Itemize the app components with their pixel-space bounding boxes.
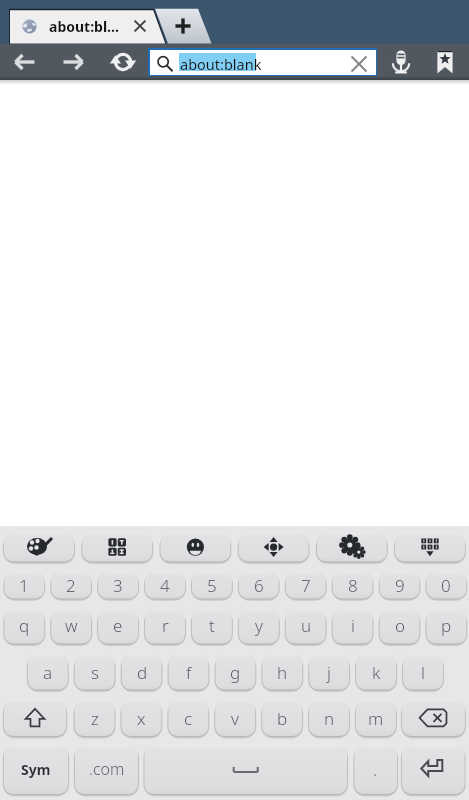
button[interactable]: Clear [351, 56, 367, 72]
staticText: g [230, 661, 241, 684]
button[interactable]: w [51, 608, 91, 643]
button[interactable]: u [286, 608, 326, 643]
staticText: v [231, 707, 239, 730]
button[interactable]: shift [4, 700, 66, 736]
button[interactable]: v [215, 700, 255, 736]
button[interactable]: k [356, 654, 396, 690]
button[interactable]: gear [317, 533, 387, 562]
staticText: 9 [395, 574, 405, 597]
button[interactable]: grid [395, 533, 465, 562]
staticText: about:blank [180, 54, 262, 74]
button[interactable]: f [169, 654, 209, 690]
staticText: e [113, 614, 123, 637]
button[interactable]: s [75, 654, 115, 690]
staticText: q [19, 614, 30, 637]
staticText: n [324, 707, 335, 730]
staticText: a [43, 661, 53, 684]
staticText: d [137, 661, 148, 684]
button[interactable]: Sym [4, 744, 68, 794]
button[interactable]: Reload [105, 47, 141, 77]
staticText: o [395, 614, 406, 637]
button[interactable]: n [309, 700, 349, 736]
staticText: y [255, 614, 263, 637]
staticText: k [372, 661, 381, 684]
button[interactable]: c [168, 700, 208, 736]
button[interactable]: m [356, 700, 396, 736]
button[interactable]: h [262, 654, 302, 690]
button[interactable]: . [354, 744, 397, 794]
staticText: 8 [348, 574, 358, 597]
button[interactable]: about:blank [148, 48, 377, 76]
button[interactable]: t [192, 608, 232, 643]
button[interactable]: y [239, 608, 279, 643]
button[interactable]: Close tab [130, 16, 150, 36]
staticText: u [301, 614, 312, 637]
button[interactable]: e [98, 608, 138, 643]
staticText: 6 [254, 574, 264, 597]
button[interactable]: 1 [4, 571, 44, 599]
button[interactable]: p [426, 608, 466, 643]
staticText: 5 [207, 574, 217, 597]
staticText: 0 [441, 574, 451, 597]
staticText: j [327, 661, 331, 684]
button[interactable]: enter [402, 744, 465, 794]
staticText: t [209, 614, 215, 637]
button[interactable]: 9 [380, 571, 420, 599]
button[interactable]: back [402, 700, 465, 736]
staticText: Sym [21, 760, 51, 779]
button[interactable]: d [122, 654, 162, 690]
staticText: w [65, 614, 78, 637]
staticText: z [91, 707, 99, 730]
button[interactable]: Bookmark [430, 47, 460, 77]
staticText: m [368, 707, 384, 730]
staticText: .com [89, 758, 125, 780]
staticText: b [277, 707, 288, 730]
staticText: p [441, 614, 452, 637]
button[interactable]: b [262, 700, 302, 736]
button[interactable]: o [380, 608, 420, 643]
staticText: 7 [301, 574, 311, 597]
button[interactable]: 8 [333, 571, 373, 599]
button[interactable]: a [28, 654, 68, 690]
button[interactable]: space [144, 744, 347, 794]
staticText: 3 [113, 574, 123, 597]
button[interactable]: i [333, 608, 373, 643]
button[interactable]: r [145, 608, 185, 643]
button[interactable]: palette [4, 533, 74, 562]
staticText: c [184, 707, 193, 730]
button[interactable]: q [4, 608, 44, 643]
button[interactable]: move [239, 533, 309, 562]
button[interactable]: 4 [145, 571, 185, 599]
staticText: f [186, 661, 192, 684]
button[interactable]: num [82, 533, 152, 562]
staticText: x [137, 707, 146, 730]
staticText: 4 [160, 574, 170, 597]
button[interactable]: x [121, 700, 161, 736]
staticText: 2 [66, 574, 76, 597]
staticText: r [162, 614, 169, 637]
button[interactable]: z [75, 700, 115, 736]
button[interactable]: New tab [174, 17, 192, 35]
button[interactable]: 6 [239, 571, 279, 599]
button[interactable]: 7 [286, 571, 326, 599]
button[interactable]: 3 [98, 571, 138, 599]
button[interactable]: .com [75, 744, 138, 794]
staticText: h [277, 661, 288, 684]
staticText: s [91, 661, 99, 684]
button[interactable]: j [309, 654, 349, 690]
button[interactable]: Forward [54, 47, 92, 77]
button[interactable]: 2 [51, 571, 91, 599]
staticText: l [421, 661, 425, 684]
button[interactable]: g [215, 654, 255, 690]
staticText: . [373, 758, 378, 781]
button[interactable]: 5 [192, 571, 232, 599]
staticText: i [351, 614, 355, 637]
staticText: 1 [19, 574, 29, 597]
button[interactable]: emoji [160, 533, 230, 562]
button[interactable]: Back [6, 47, 44, 77]
button[interactable]: l [403, 654, 443, 690]
button[interactable]: 0 [426, 571, 466, 599]
staticText: about:bl… [49, 17, 120, 36]
button[interactable]: Voice search [386, 47, 416, 77]
